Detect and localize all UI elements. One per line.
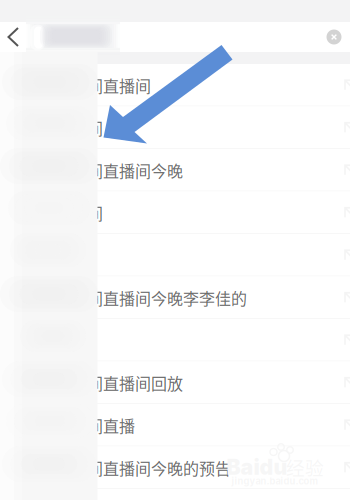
button[interactable] — [0, 319, 350, 361]
staticText: jingyan.baidu.com — [231, 475, 318, 487]
button[interactable]: 间直播间今晚李李佳的 — [0, 276, 350, 319]
button[interactable]: 间 — [0, 191, 350, 234]
button[interactable]: 间直播间今晚 — [0, 149, 350, 191]
button[interactable]: 间直播间回放 — [0, 361, 350, 404]
staticText: 间直播间今晚李李佳的 — [87, 286, 247, 309]
staticText: 经验 — [286, 453, 324, 480]
button[interactable]: 间直播间今晚的预告 — [0, 446, 350, 489]
button[interactable]: 间直播 — [0, 404, 350, 446]
staticText: 间 — [87, 201, 103, 224]
staticText: Baidu — [226, 454, 287, 480]
staticText: 间 — [87, 116, 103, 139]
staticText: 间直播间 — [87, 74, 151, 97]
staticText: 丨 — [87, 244, 103, 267]
staticText: 间直播间回放 — [87, 371, 183, 394]
button[interactable]: Clear search field — [321, 22, 350, 52]
staticText: 间直播间今晚的预告 — [87, 456, 231, 479]
staticText: 间直播间今晚 — [87, 159, 183, 182]
button[interactable]: Back — [0, 22, 32, 52]
button[interactable]: 间 — [0, 106, 350, 149]
button[interactable]: 间直播间 — [0, 64, 350, 106]
staticText: 间直播 — [87, 414, 135, 437]
button[interactable]: 丨 — [0, 234, 350, 276]
